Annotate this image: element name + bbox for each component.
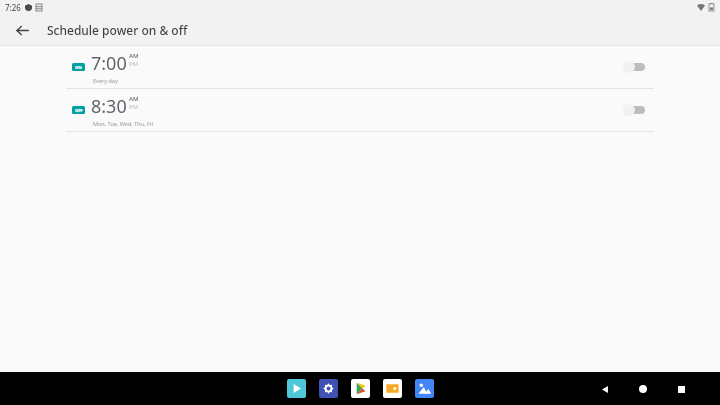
- button[interactable]: ON: [0, 46, 720, 88]
- staticText: AM: [129, 95, 139, 103]
- button[interactable]: Settings: [319, 379, 338, 398]
- staticText: 7:26: [5, 2, 21, 13]
- staticText: PM: [129, 60, 139, 68]
- button[interactable]: Back: [596, 380, 614, 398]
- staticText: Mon, Tue, Wed, Thu, Fri: [93, 120, 154, 127]
- button[interactable]: Wallet: [383, 379, 402, 398]
- button[interactable]: Toggle alarm 7:00: [620, 55, 654, 79]
- button[interactable]: Photos: [415, 379, 434, 398]
- button[interactable]: Play video: [287, 379, 306, 398]
- staticText: AM: [129, 52, 139, 60]
- staticText: ON: [75, 65, 82, 70]
- staticText: 8:30: [91, 94, 127, 119]
- button[interactable]: Back: [11, 19, 33, 41]
- staticText: Schedule power on & off: [47, 22, 188, 38]
- staticText: Every day: [93, 77, 118, 84]
- button[interactable]: Toggle alarm 8:30: [620, 98, 654, 122]
- staticText: PM: [129, 103, 139, 111]
- button[interactable]: Home: [634, 380, 652, 398]
- button[interactable]: OFF: [0, 89, 720, 131]
- button[interactable]: Recents: [672, 380, 690, 398]
- button[interactable]: Play Store: [351, 379, 370, 398]
- staticText: 7:00: [91, 51, 127, 76]
- staticText: OFF: [75, 108, 83, 113]
